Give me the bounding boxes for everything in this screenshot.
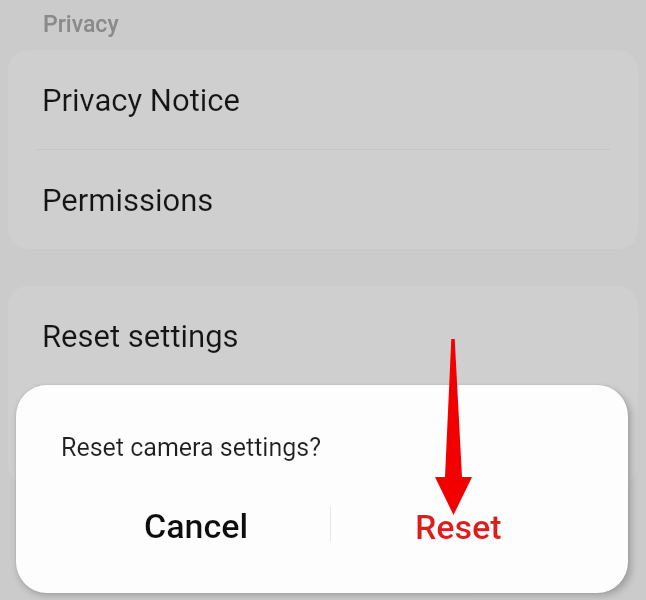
staticText: Privacy Notice bbox=[42, 82, 240, 118]
other: Annotation arrow pointing to Reset bbox=[0, 0, 646, 600]
button[interactable]: Privacy Notice bbox=[8, 50, 638, 149]
button[interactable]: Setting bbox=[8, 386, 638, 485]
button[interactable]: Permissions bbox=[8, 150, 638, 249]
staticText: Cancel bbox=[144, 506, 249, 546]
staticText: Permissions bbox=[42, 182, 214, 218]
staticText: Reset settings bbox=[42, 318, 239, 354]
button[interactable]: Reset settings bbox=[8, 286, 638, 385]
staticText: Privacy bbox=[43, 11, 119, 38]
button[interactable]: Cancel bbox=[114, 496, 279, 556]
staticText: Reset bbox=[415, 507, 502, 547]
button[interactable]: Reset bbox=[376, 497, 541, 557]
staticText: Reset camera settings? bbox=[61, 433, 322, 462]
